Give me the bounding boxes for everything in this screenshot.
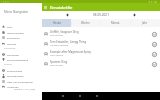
button[interactable]: Tom Entwistler, Linegg Thing [0,39,160,49]
button[interactable]: Termine [0,41,42,46]
staticText: Fire Climate [50,34,63,37]
staticText: Version 1.10.1 (100) [14,88,36,91]
button[interactable]: Next day [109,11,160,19]
button[interactable]: Start [0,24,42,29]
staticText: Fahrzeuge [4,47,16,50]
button[interactable]: Über uns & Impressum [0,79,42,84]
staticText: Einsatzliste [7,36,20,39]
button[interactable]: Fahrzeuge [0,52,42,57]
button[interactable]: Spanner Ding [0,59,160,69]
staticText: 06.05.2021 [93,13,109,17]
button[interactable]: Recent apps [93,92,101,100]
staticText: Einsatzkräfte [50,5,73,10]
staticText: Abmelden [7,85,19,88]
button[interactable]: Back [59,92,67,100]
staticText: Über uns & Impressum [7,80,34,83]
button[interactable]: Home [76,92,84,100]
staticText: System [4,63,12,66]
button[interactable]: Fahrzeugbelegung [0,57,42,62]
staticText: Cars Vehicle [50,54,64,57]
button[interactable]: Monat [100,19,130,27]
staticText: Example after Magnesium Spray [50,50,91,54]
staticText: Tom Entwistler, Linegg Thing [50,40,87,44]
button[interactable]: Jahr [130,19,160,27]
staticText: Jahr [142,21,148,25]
staticText: Fahrzeuge [7,53,19,56]
button[interactable]: Meine Einsätze [0,30,42,35]
staticText: Einstellungen [7,69,23,72]
button[interactable]: Heute [42,19,71,27]
staticText: Monat [111,21,120,25]
button[interactable]: Open navigation menu [42,4,49,11]
button[interactable]: Griffith, Seagrave Ding [0,29,160,39]
button[interactable]: Abmelden [0,84,42,89]
button[interactable]: Benutzerdaten [0,73,42,78]
button[interactable]: Previous day [42,11,93,19]
staticText: Termine [7,42,17,45]
staticText: Woche [81,21,90,25]
staticText: Fahrzeugbelegung [7,58,29,61]
button[interactable]: Einsatzliste [0,35,42,40]
staticText: Fire Climate [50,64,63,67]
staticText: Benutzerdaten [7,74,24,77]
button[interactable]: Einstellungen [0,68,42,73]
staticText: Heute [53,21,61,25]
staticText: Locatelli Criticide [50,44,69,47]
button[interactable]: Example after Magnesium Spray [0,49,160,59]
staticText: Spanner Ding [50,60,68,64]
button[interactable]: Woche [71,19,100,27]
staticText: Meine Einsätze [7,31,24,34]
staticText: Start [7,25,13,28]
staticText: Menü Navigation [4,10,29,14]
staticText: Griffith, Seagrave Ding [50,30,79,34]
